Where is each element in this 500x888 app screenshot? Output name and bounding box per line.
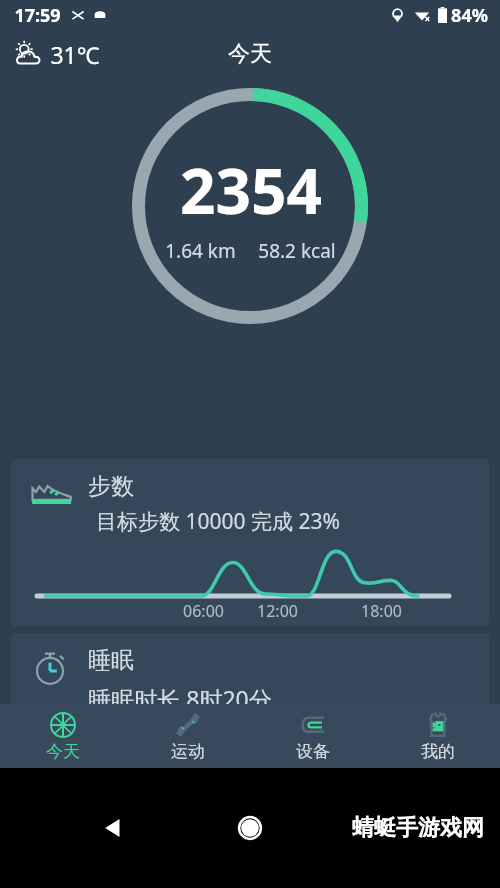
staticText: 84% <box>451 3 488 28</box>
button[interactable]: 设备 <box>250 704 375 768</box>
other: Back <box>100 815 126 841</box>
staticText: 18:00 <box>361 600 402 622</box>
staticText: 睡眠 <box>88 646 134 675</box>
staticText: 今天 <box>228 40 272 68</box>
other: 今天 <box>48 710 78 740</box>
staticText: 运动 <box>171 741 205 762</box>
staticText: 31℃ <box>50 39 100 70</box>
button[interactable]: 运动 <box>125 704 250 768</box>
staticText: 17:59 <box>14 3 61 28</box>
staticText: 2354 <box>180 148 322 232</box>
staticText: 睡眠时长 8时20分 <box>88 683 272 714</box>
staticText: 蜻蜓手游戏网 <box>352 814 484 842</box>
staticText: 06:00 <box>183 600 224 622</box>
staticText: 今天 <box>46 741 80 762</box>
staticText: 目标步数 10000 完成 23% <box>96 507 340 536</box>
button[interactable]: 我的 <box>375 704 500 768</box>
other: 设备 <box>298 710 328 740</box>
button[interactable]: 睡眠 <box>11 633 489 768</box>
staticText: 我的 <box>421 741 455 762</box>
other: Home <box>237 815 263 841</box>
staticText: 58.2 kcal <box>258 238 336 264</box>
staticText: 12:00 <box>257 600 298 622</box>
other: 运动 <box>173 710 203 740</box>
other: 我的 <box>423 710 453 740</box>
staticText: 1.64 km <box>165 238 236 264</box>
staticText: 步数 <box>88 472 134 501</box>
staticText: 设备 <box>296 741 330 762</box>
button[interactable]: 今天 <box>0 704 125 768</box>
button[interactable]: 步数 <box>11 459 489 626</box>
